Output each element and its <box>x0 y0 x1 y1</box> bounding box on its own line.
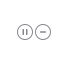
button[interactable]: Pause <box>17 24 32 39</box>
button[interactable]: Stop <box>35 24 50 39</box>
